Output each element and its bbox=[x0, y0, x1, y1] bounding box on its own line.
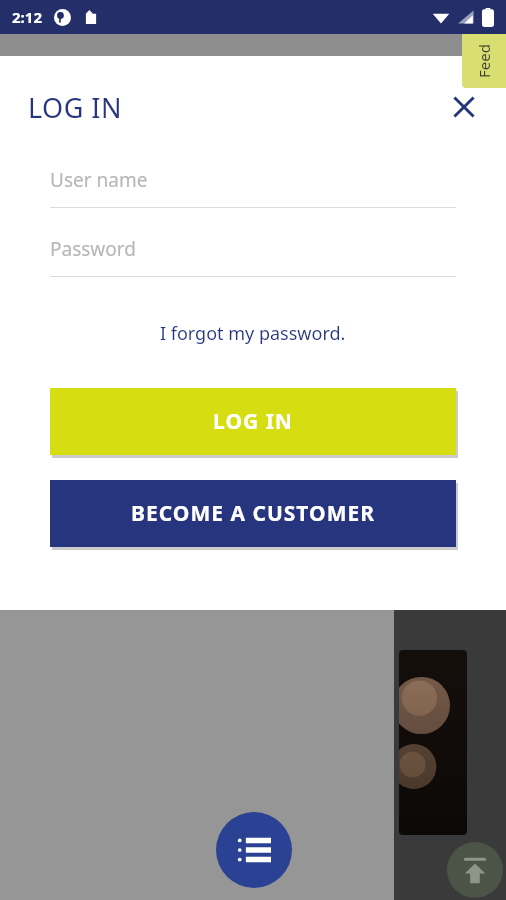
staticText: Feed bbox=[474, 44, 494, 78]
button[interactable]: Password bbox=[50, 236, 456, 277]
staticText: 2:12 bbox=[12, 7, 42, 27]
staticText: BECOME A CUSTOMER bbox=[131, 499, 375, 528]
button[interactable]: User name bbox=[50, 167, 456, 208]
button[interactable]: I forgot my password. bbox=[154, 315, 352, 352]
button[interactable]: Scroll to top bbox=[447, 842, 503, 898]
staticText: LOG IN bbox=[28, 89, 123, 126]
staticText: LOG IN bbox=[213, 407, 293, 436]
staticText: User name bbox=[50, 167, 148, 193]
button[interactable]: LOG IN bbox=[50, 388, 456, 455]
button[interactable]: Menu list bbox=[216, 812, 292, 888]
staticText: I forgot my password. bbox=[160, 321, 346, 346]
button[interactable]: Feedback bbox=[462, 34, 506, 88]
button[interactable]: Close bbox=[440, 83, 488, 131]
staticText: Password bbox=[50, 236, 136, 262]
button[interactable]: BECOME A CUSTOMER bbox=[50, 480, 456, 547]
